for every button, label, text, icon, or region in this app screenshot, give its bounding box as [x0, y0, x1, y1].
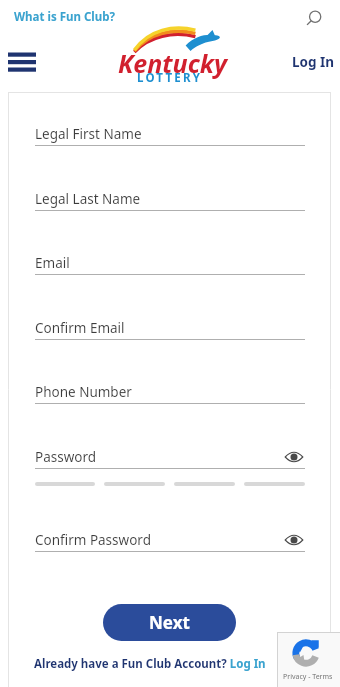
- button[interactable]: Already have a Fun Club Account? Log In: [34, 654, 266, 674]
- button[interactable]: Search: [302, 5, 330, 33]
- button[interactable]: Next: [103, 604, 236, 641]
- staticText: Confirm Password: [35, 531, 151, 549]
- staticText: Confirm Email: [35, 319, 125, 337]
- button[interactable]: Confirm Email: [35, 316, 305, 340]
- staticText: Next: [149, 611, 190, 634]
- button[interactable]: Phone Number: [35, 380, 305, 404]
- button[interactable]: Menu: [5, 48, 39, 78]
- staticText: Phone Number: [35, 383, 132, 401]
- staticText: What is Fun Club?: [14, 9, 115, 25]
- button[interactable]: Show password: [283, 531, 305, 549]
- button[interactable]: reCAPTCHA Privacy and Terms: [277, 632, 340, 687]
- button[interactable]: Email: [35, 251, 305, 275]
- staticText: Kentucky: [118, 46, 227, 80]
- staticText: Email: [35, 254, 70, 272]
- button[interactable]: Show password: [283, 448, 305, 466]
- button[interactable]: Password: [35, 445, 305, 469]
- staticText: Legal First Name: [35, 125, 142, 143]
- staticText: Log In: [292, 53, 335, 71]
- staticText: Privacy - Terms: [283, 672, 333, 682]
- button[interactable]: Legal First Name: [35, 122, 305, 146]
- staticText: LOTTERY: [137, 70, 203, 86]
- button[interactable]: What is Fun Club?: [13, 7, 116, 27]
- button[interactable]: Confirm Password: [35, 528, 305, 552]
- staticText: Password: [35, 448, 97, 466]
- staticText: Legal Last Name: [35, 190, 141, 208]
- button[interactable]: Kentucky Lottery home: [110, 30, 232, 85]
- button[interactable]: Log In: [290, 50, 337, 74]
- staticText: Already have a Fun Club Account? Log In: [34, 656, 266, 672]
- button[interactable]: Legal Last Name: [35, 187, 305, 211]
